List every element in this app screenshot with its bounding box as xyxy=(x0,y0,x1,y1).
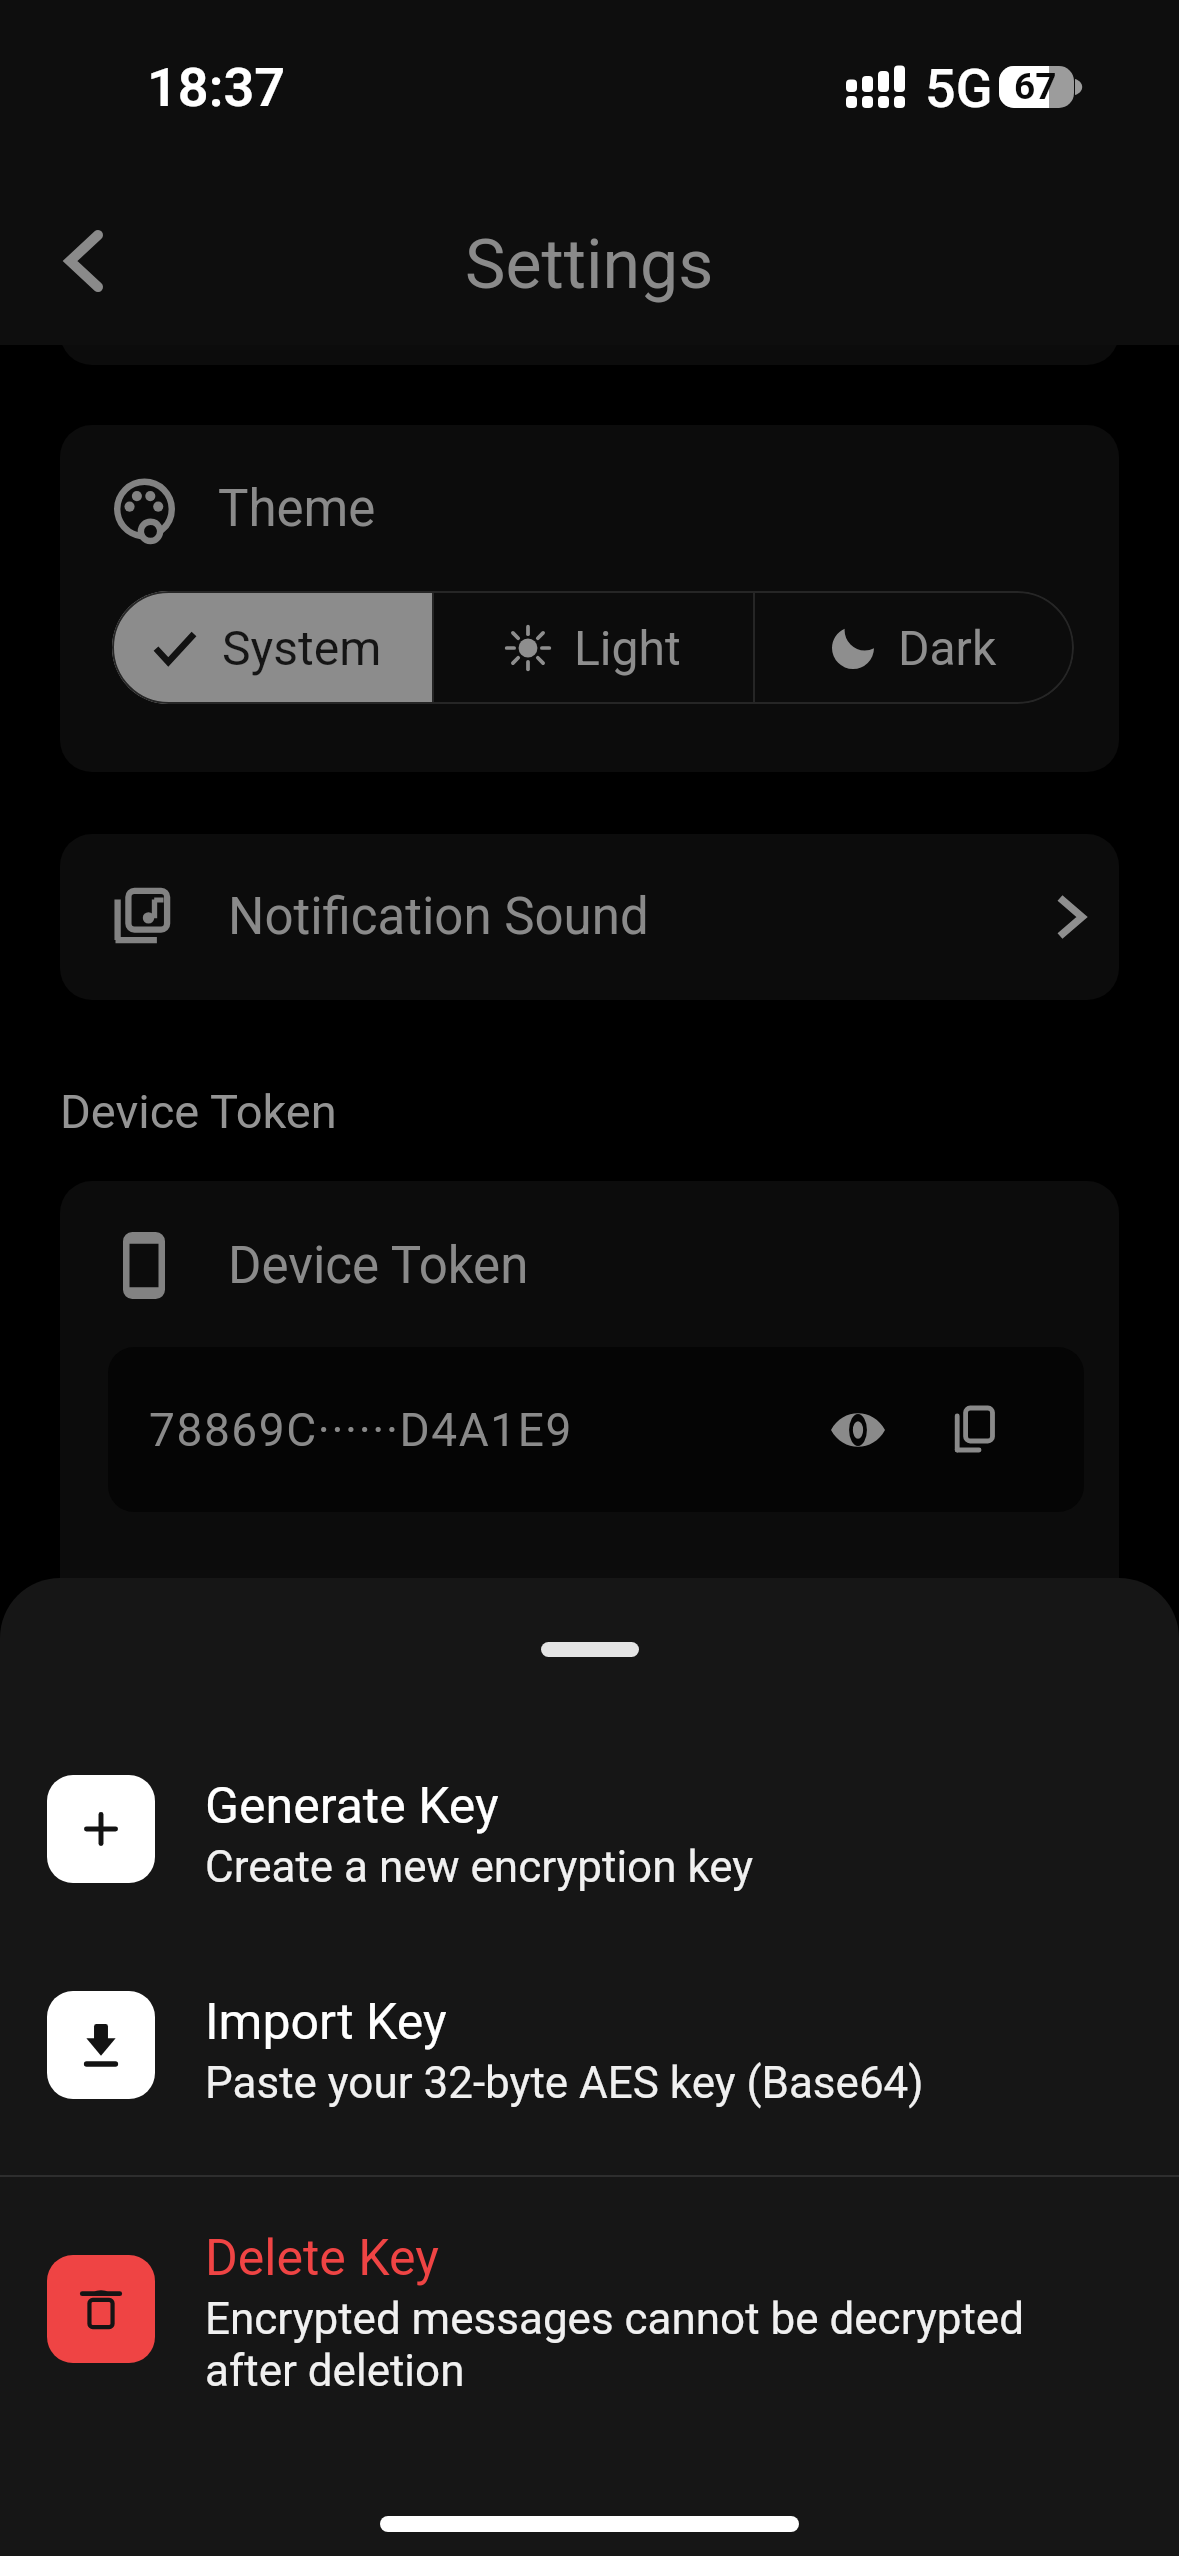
button[interactable]: Light xyxy=(434,591,753,704)
button[interactable]: Generate Key xyxy=(0,1747,1179,1911)
staticText: Settings xyxy=(465,225,714,305)
button[interactable]: Import Key xyxy=(0,1963,1179,2127)
staticText: Light xyxy=(574,620,681,676)
staticText: Encrypted messages cannot be decrypted xyxy=(205,2293,1025,2345)
staticText: Theme xyxy=(218,479,376,539)
button[interactable]: Back xyxy=(27,204,140,317)
button[interactable]: Delete Key xyxy=(0,2227,1179,2391)
staticText: 67 xyxy=(1014,66,1057,107)
staticText: Dark xyxy=(898,620,997,676)
button[interactable]: Copy token xyxy=(932,1388,1016,1472)
staticText: 18:37 xyxy=(147,56,286,119)
staticText: Device Token xyxy=(228,1236,529,1296)
staticText: System xyxy=(222,620,382,676)
button[interactable]: System xyxy=(112,591,432,704)
staticText: 78869C······D4A1E9 xyxy=(149,1403,574,1457)
staticText: Notification Sound xyxy=(228,887,649,947)
staticText: Import Key xyxy=(205,1993,447,2052)
button[interactable]: Dark xyxy=(755,591,1074,704)
staticText: 5G xyxy=(925,57,993,120)
staticText: after deletion xyxy=(205,2345,465,2393)
staticText: Create a new encryption key xyxy=(205,1841,754,1893)
button[interactable]: Show token xyxy=(816,1388,900,1472)
staticText: Delete Key xyxy=(205,2229,439,2288)
button[interactable]: Notification Sound xyxy=(60,834,1119,1000)
staticText: Paste your 32-byte AES key (Base64) xyxy=(205,2057,924,2109)
staticText: Device Token xyxy=(60,1084,337,1139)
staticText: Generate Key xyxy=(205,1777,499,1836)
